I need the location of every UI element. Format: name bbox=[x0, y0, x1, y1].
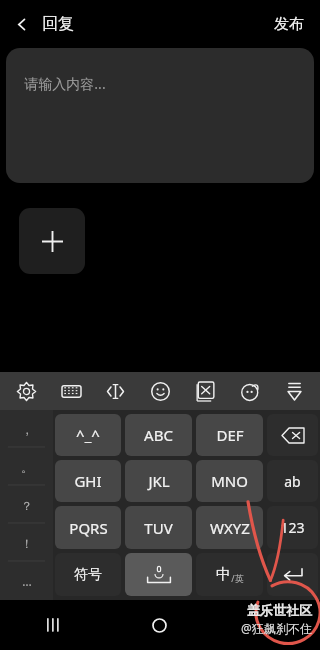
button[interactable]: Recents bbox=[0, 600, 106, 650]
staticText: @狂飙刹不住 bbox=[241, 620, 312, 636]
button[interactable]: 中 bbox=[196, 553, 263, 596]
button[interactable]: Back bbox=[8, 6, 80, 42]
button[interactable]: Space bbox=[125, 553, 192, 596]
staticText: ^_^ bbox=[76, 425, 100, 445]
button[interactable]: 。 bbox=[0, 448, 53, 486]
button[interactable]: WXYZ bbox=[196, 506, 263, 549]
button[interactable]: Home bbox=[106, 600, 213, 650]
button[interactable]: ab bbox=[267, 460, 318, 502]
staticText: WXYZ bbox=[210, 518, 250, 538]
button[interactable]: JKL bbox=[125, 460, 192, 502]
staticText: 请输入内容... bbox=[24, 74, 106, 93]
button[interactable]: ABC bbox=[125, 414, 192, 456]
staticText: GHI bbox=[74, 471, 102, 491]
button[interactable]: Stickers bbox=[231, 372, 269, 410]
button[interactable]: 123 bbox=[267, 506, 318, 549]
staticText: 。 bbox=[21, 460, 33, 475]
staticText: … bbox=[22, 573, 32, 589]
button[interactable]: ！ bbox=[0, 524, 53, 562]
button[interactable]: ？ bbox=[0, 486, 53, 524]
button[interactable]: … bbox=[0, 562, 53, 600]
staticText: 中 bbox=[216, 565, 231, 584]
button[interactable]: DEF bbox=[196, 414, 263, 456]
staticText: 符号 bbox=[74, 566, 102, 584]
button[interactable]: Settings bbox=[7, 372, 45, 410]
staticText: ！ bbox=[21, 536, 33, 551]
button[interactable]: Clipboard bbox=[186, 372, 224, 410]
staticText: PQRS bbox=[69, 518, 108, 538]
button[interactable]: Add image bbox=[19, 208, 85, 274]
button[interactable]: 符号 bbox=[55, 553, 121, 596]
staticText: ？ bbox=[21, 498, 33, 513]
staticText: 123 bbox=[280, 518, 305, 537]
button[interactable]: Enter bbox=[267, 553, 318, 596]
staticText: MNO bbox=[211, 471, 248, 491]
button[interactable]: Backspace bbox=[267, 414, 318, 456]
button[interactable]: Hide keyboard bbox=[275, 372, 313, 410]
staticText: 回复 bbox=[42, 14, 74, 34]
button[interactable]: Cursor control bbox=[96, 372, 134, 410]
staticText: ABC bbox=[144, 425, 173, 445]
button[interactable]: PQRS bbox=[55, 506, 121, 549]
staticText: 发布 bbox=[274, 15, 304, 34]
staticText: JKL bbox=[148, 471, 170, 491]
button[interactable]: 请输入内容... bbox=[6, 48, 314, 183]
button[interactable]: ， bbox=[0, 410, 53, 448]
staticText: ab bbox=[284, 472, 301, 491]
button[interactable]: Keyboard layout bbox=[52, 372, 90, 410]
button[interactable]: Emoji bbox=[141, 372, 179, 410]
button[interactable]: GHI bbox=[55, 460, 121, 502]
button[interactable]: 发布 bbox=[266, 7, 312, 42]
button[interactable]: Back bbox=[213, 600, 320, 650]
staticText: ， bbox=[21, 422, 33, 437]
staticText: /英 bbox=[231, 572, 244, 584]
staticText: DEF bbox=[216, 425, 244, 445]
staticText: 盖乐世社区 bbox=[247, 602, 312, 618]
staticText: TUV bbox=[144, 518, 173, 538]
button[interactable]: TUV bbox=[125, 506, 192, 549]
button[interactable]: MNO bbox=[196, 460, 263, 502]
button[interactable]: ^_^ bbox=[55, 414, 121, 456]
